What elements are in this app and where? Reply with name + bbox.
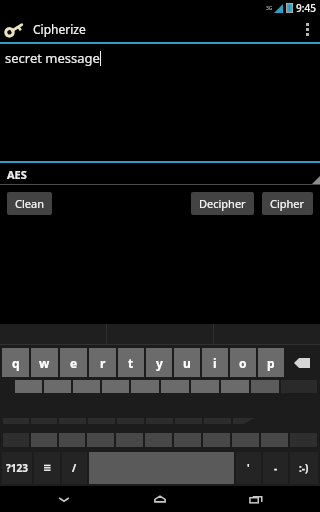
button[interactable]: Delete — [285, 347, 319, 378]
staticText: r — [100, 355, 106, 371]
button[interactable]: w — [31, 348, 58, 377]
button[interactable]: :-) — [290, 452, 318, 484]
staticText: :-) — [299, 461, 309, 475]
button[interactable]: Home — [128, 486, 192, 512]
button[interactable]: q — [2, 348, 29, 377]
button[interactable]: Recent apps — [224, 486, 288, 512]
button[interactable]: Cipher — [262, 192, 313, 215]
staticText: ' — [247, 461, 250, 475]
staticText: u — [183, 355, 191, 371]
staticText: Cipher — [270, 196, 305, 211]
staticText: e — [70, 355, 78, 371]
button[interactable]: y — [146, 348, 172, 377]
staticText: Cipherize — [33, 21, 86, 37]
button[interactable]: Back — [32, 486, 96, 512]
button[interactable]: e — [60, 348, 87, 377]
button[interactable]: secret message — [0, 44, 320, 161]
button[interactable]: r — [89, 348, 116, 377]
button[interactable]: More options — [294, 16, 320, 42]
staticText: ?123 — [6, 461, 28, 475]
staticText: Decipher — [199, 196, 246, 211]
button[interactable]: AES — [0, 163, 320, 185]
staticText: p — [267, 355, 275, 371]
button[interactable]: / — [62, 452, 87, 484]
staticText: t — [128, 355, 134, 371]
button[interactable]: p — [258, 348, 284, 377]
staticText: q — [12, 355, 20, 371]
button[interactable]: t — [118, 348, 144, 377]
staticText: w — [39, 355, 50, 371]
button[interactable]: ' — [236, 452, 261, 484]
button[interactable]: i — [202, 348, 228, 377]
staticText: / — [72, 461, 77, 475]
button[interactable]: Clean — [7, 192, 52, 215]
staticText: Clean — [15, 196, 44, 211]
staticText: AES — [7, 167, 27, 182]
staticText: i — [213, 355, 217, 371]
button[interactable]: u — [174, 348, 200, 377]
staticText: - — [274, 461, 278, 475]
button[interactable]: - — [263, 452, 288, 484]
staticText: y — [156, 355, 163, 371]
button[interactable]: Decipher — [191, 192, 254, 215]
staticText: ≡ — [43, 462, 52, 474]
staticText: o — [239, 355, 247, 371]
staticText: 9:45 — [296, 1, 316, 15]
button[interactable]: ≡ — [34, 452, 60, 484]
staticText: secret message — [5, 49, 100, 67]
button[interactable]: o — [230, 348, 256, 377]
button[interactable]: ?123 — [2, 452, 32, 484]
staticText: 3G — [266, 5, 273, 12]
